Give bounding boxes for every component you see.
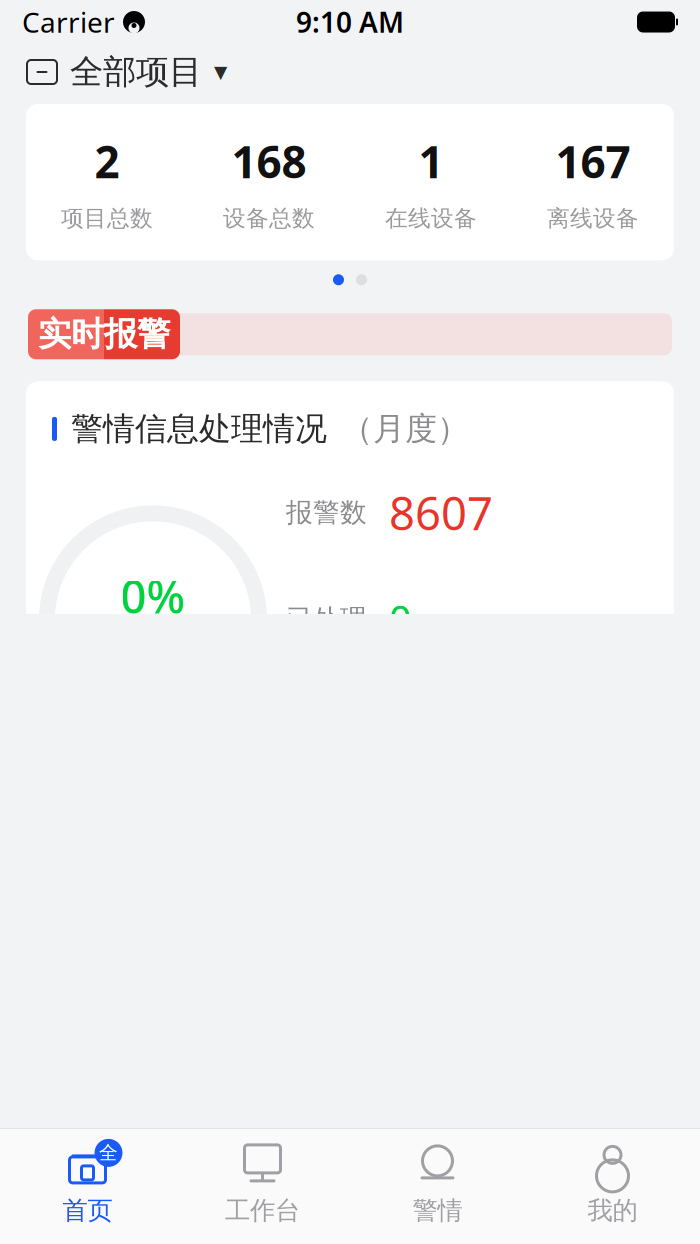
staticText: /1 bbox=[143, 1097, 166, 1131]
button[interactable]: 0 bbox=[350, 1124, 512, 1244]
staticText: 9:10 AM bbox=[296, 3, 404, 41]
staticText: 报警数 bbox=[286, 496, 367, 529]
staticText: 已处理 bbox=[286, 603, 367, 636]
staticText: 离线设备 bbox=[547, 204, 639, 232]
button[interactable]: 实时报警 bbox=[0, 309, 700, 359]
button[interactable]: 工作台 bbox=[175, 1141, 350, 1226]
staticText: /1 bbox=[305, 1097, 328, 1131]
staticText: 2 bbox=[94, 132, 119, 190]
staticText: 项目总数 bbox=[61, 204, 153, 232]
staticText: 0% bbox=[120, 566, 185, 626]
staticText: 0 bbox=[129, 1097, 143, 1131]
staticText: /1 bbox=[467, 1097, 490, 1131]
staticText: 工作台 bbox=[225, 1195, 300, 1226]
staticText: 1 bbox=[418, 132, 443, 190]
button[interactable]: 我的 bbox=[525, 1141, 700, 1226]
button[interactable]: 0 bbox=[512, 1124, 674, 1244]
staticText: 167 bbox=[555, 132, 630, 190]
staticText: （月度） bbox=[341, 409, 469, 449]
staticText: 0 bbox=[453, 1097, 467, 1131]
staticText: 168 bbox=[231, 132, 306, 190]
staticText: 警情信息处理情况 bbox=[71, 409, 327, 449]
button[interactable]: 警情 bbox=[350, 1141, 525, 1226]
staticText: Carrier bbox=[22, 3, 115, 41]
staticText: 0 bbox=[615, 1097, 629, 1131]
staticText: /1 bbox=[629, 1097, 652, 1131]
staticText: 设备总数 bbox=[223, 204, 315, 232]
staticText: 全部项目 bbox=[70, 51, 202, 92]
staticText: 在线设备 bbox=[385, 204, 477, 232]
staticText: 0 bbox=[389, 593, 412, 646]
button[interactable]: 全 bbox=[0, 1141, 175, 1226]
button[interactable]: 0 bbox=[188, 1124, 350, 1244]
staticText: ▼ bbox=[214, 62, 227, 82]
button[interactable]: 全部项目 bbox=[0, 44, 700, 100]
staticText: 警情 bbox=[412, 1195, 462, 1226]
staticText: 0 bbox=[291, 1097, 305, 1131]
staticText: 首页 bbox=[62, 1195, 112, 1226]
staticText: 我的 bbox=[587, 1195, 637, 1226]
staticText: 全 bbox=[99, 1141, 118, 1164]
button[interactable]: 0 bbox=[26, 1124, 188, 1244]
staticText: 实时报警 bbox=[38, 314, 170, 355]
staticText: 8607 bbox=[389, 483, 493, 543]
